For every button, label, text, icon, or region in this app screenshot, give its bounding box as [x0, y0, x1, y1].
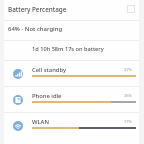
staticText: 37% — [124, 67, 132, 72]
staticText: WLAN — [32, 118, 49, 126]
staticText: 64% - Not charging — [8, 25, 63, 33]
button[interactable]: Battery Percentage — [0, 0, 144, 20]
staticText: 1d 10h 58m 17s on battery — [32, 45, 104, 53]
staticText: Phone idle — [32, 92, 62, 100]
staticText: Battery Percentage — [8, 5, 67, 14]
button[interactable]: Phone idle — [0, 87, 144, 113]
staticText: 17% — [124, 119, 132, 124]
staticText: 26% — [124, 93, 132, 98]
button[interactable]: Cell standby — [0, 61, 144, 87]
button[interactable]: WLAN — [0, 113, 144, 139]
other: WLAN — [13, 121, 23, 131]
staticText: Cell standby — [32, 66, 67, 74]
other: Cell standby — [13, 69, 23, 79]
other: Phone idle — [13, 95, 23, 105]
button[interactable]: 64% - Not charging — [0, 21, 144, 40]
